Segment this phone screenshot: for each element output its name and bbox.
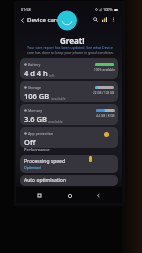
- button[interactable]: Search: [91, 15, 100, 24]
- staticText: Memory: [28, 108, 43, 113]
- staticText: left: [49, 73, 55, 78]
- staticText: available: [48, 119, 63, 124]
- staticText: 4 d 4 h: [24, 68, 48, 78]
- staticText: App protection: [28, 131, 54, 136]
- button[interactable]: Home: [63, 189, 76, 202]
- staticText: Great!: [60, 35, 85, 46]
- staticText: 3.6 GB: [24, 114, 47, 124]
- button[interactable]: Processing speed: [20, 155, 118, 173]
- staticText: 4.4 GB / 8 GB: [96, 114, 115, 118]
- staticText: 106 GB: [24, 91, 50, 101]
- staticText: 100% available: [94, 68, 115, 72]
- staticText: Battery: [28, 62, 41, 67]
- staticText: Optimised: [24, 165, 41, 170]
- button[interactable]: App protection: [20, 127, 118, 148]
- staticText: Off: [24, 137, 36, 147]
- staticText: Processing speed: [24, 158, 65, 165]
- staticText: available: [51, 96, 66, 101]
- button[interactable]: Storage: [20, 81, 118, 102]
- button[interactable]: Auto optimisation: [20, 175, 118, 186]
- button[interactable]: Usage statistics: [100, 15, 109, 24]
- button[interactable]: More options: [109, 15, 118, 24]
- staticText: Your care report has been updated. See w…: [27, 45, 113, 50]
- button[interactable]: Back: [92, 189, 105, 202]
- button[interactable]: Recents: [33, 189, 46, 202]
- staticText: Performance: [24, 147, 50, 153]
- staticText: 100%: [103, 7, 113, 12]
- button[interactable]: Battery: [20, 58, 118, 79]
- button[interactable]: Navigate up: [17, 15, 27, 25]
- staticText: Storage: [28, 85, 42, 90]
- staticText: care has done to keep your phone in good…: [27, 50, 114, 55]
- staticText: 01:58: [21, 7, 31, 12]
- staticText: 22 GB / 128 GB: [93, 91, 115, 95]
- staticText: Device care: [27, 16, 60, 24]
- button[interactable]: Memory: [20, 104, 118, 125]
- staticText: Auto optimisation: [24, 177, 66, 184]
